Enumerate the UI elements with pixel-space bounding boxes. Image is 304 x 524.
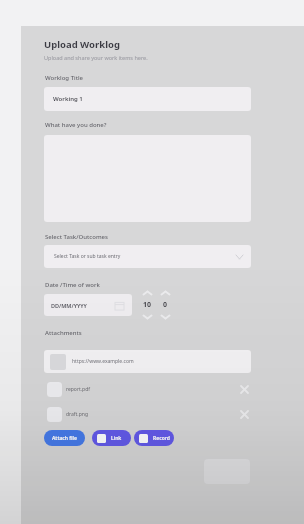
staticText: Upload Worklog: [44, 38, 120, 51]
button[interactable]: Select Task or sub task entry: [44, 245, 251, 268]
other: Remove attachment: [241, 411, 248, 418]
staticText: Upload and share your work items here.: [44, 54, 148, 61]
button[interactable]: DD/MM/YYYY: [44, 294, 132, 316]
staticText: Record: [153, 435, 170, 442]
other: Remove attachment: [241, 386, 248, 393]
button[interactable]: https://www.example.com: [44, 350, 251, 373]
staticText: Select Task/Outcomes: [45, 233, 108, 241]
button[interactable]: draft.png: [44, 406, 251, 422]
button[interactable]: Link: [92, 430, 131, 446]
staticText: Attach file: [52, 435, 77, 442]
staticText: draft.png: [66, 411, 88, 418]
button[interactable]: report.pdf: [44, 381, 251, 397]
button[interactable]: Record: [134, 430, 174, 446]
staticText: Attachments: [45, 329, 82, 337]
staticText: https://www.example.com: [72, 358, 134, 365]
staticText: 10: [143, 300, 152, 310]
button[interactable]: Adjust value: [157, 291, 173, 319]
staticText: Link: [111, 435, 122, 442]
staticText: Working 1: [53, 95, 83, 103]
staticText: DD/MM/YYYY: [51, 302, 87, 309]
staticText: What have you done?: [45, 121, 107, 129]
button[interactable]: Adjust value: [139, 291, 155, 319]
staticText: Worklog Title: [45, 74, 84, 82]
staticText: Select Task or sub task entry: [54, 253, 121, 260]
button[interactable]: Working 1: [44, 87, 251, 111]
staticText: Date /Time of work: [45, 281, 100, 289]
staticText: 0: [163, 300, 168, 310]
staticText: report.pdf: [66, 386, 90, 393]
button[interactable]: Attach file: [44, 430, 85, 446]
